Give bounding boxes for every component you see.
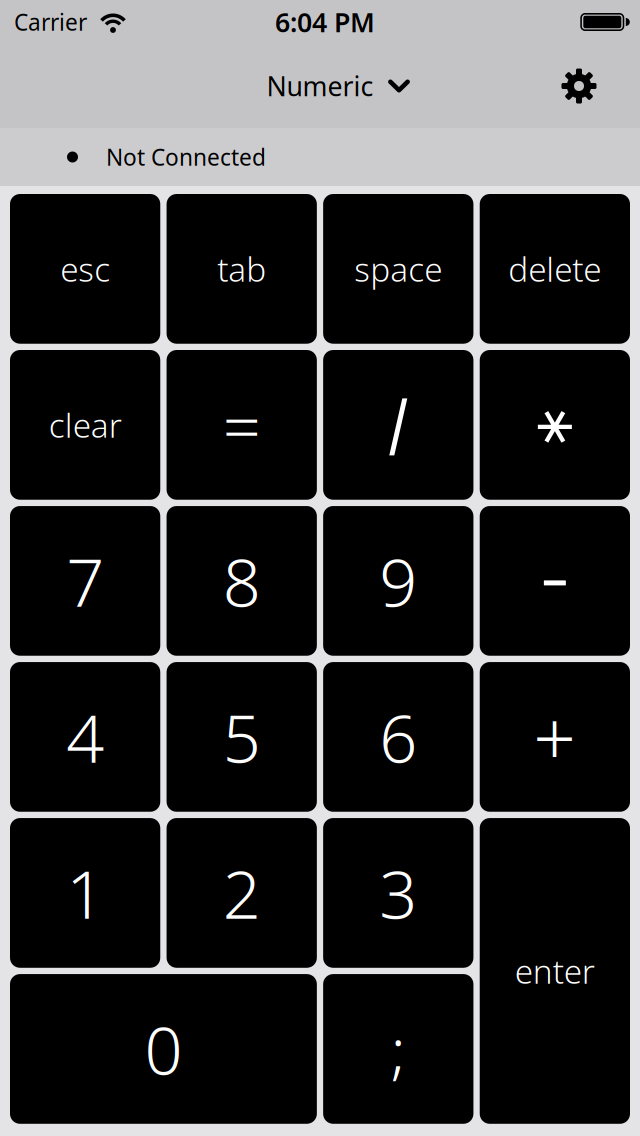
- staticText: 7: [66, 537, 104, 625]
- button[interactable]: 7: [10, 506, 160, 656]
- staticText: ;: [391, 1008, 406, 1090]
- staticText: 8: [223, 537, 261, 625]
- button[interactable]: 0: [10, 974, 317, 1124]
- button[interactable]: 4: [10, 662, 160, 812]
- button[interactable]: Settings: [561, 68, 597, 104]
- button[interactable]: 9: [323, 506, 473, 656]
- button[interactable]: esc: [10, 194, 160, 344]
- button[interactable]: Multiply: [480, 350, 630, 500]
- button[interactable]: Numeric: [262, 58, 420, 114]
- staticText: 3: [379, 849, 417, 937]
- button[interactable]: ;: [323, 974, 473, 1124]
- staticText: esc: [60, 247, 110, 291]
- button[interactable]: 3: [323, 818, 473, 968]
- staticText: Carrier: [14, 7, 87, 37]
- staticText: 5: [223, 693, 261, 781]
- button[interactable]: 5: [167, 662, 317, 812]
- staticText: 0: [144, 1005, 182, 1093]
- button[interactable]: delete: [480, 194, 630, 344]
- staticText: enter: [515, 949, 595, 993]
- button[interactable]: 2: [167, 818, 317, 968]
- staticText: Not Connected: [106, 142, 266, 172]
- staticText: space: [354, 247, 442, 291]
- staticText: +: [533, 687, 576, 786]
- button[interactable]: 8: [167, 506, 317, 656]
- button[interactable]: =: [167, 350, 317, 500]
- button[interactable]: 1: [10, 818, 160, 968]
- staticText: Numeric: [266, 68, 373, 104]
- button[interactable]: clear: [10, 350, 160, 500]
- button[interactable]: enter: [480, 818, 630, 1124]
- staticText: 1: [66, 849, 104, 937]
- button[interactable]: tab: [167, 194, 317, 344]
- staticText: 4: [66, 693, 104, 781]
- staticText: clear: [49, 403, 122, 447]
- button[interactable]: Minus: [480, 506, 630, 656]
- staticText: delete: [508, 247, 601, 291]
- button[interactable]: Divide: [323, 350, 473, 500]
- staticText: 6:04 PM: [275, 4, 375, 40]
- button[interactable]: space: [323, 194, 473, 344]
- staticText: tab: [217, 247, 266, 291]
- staticText: =: [223, 381, 261, 469]
- staticText: 9: [379, 537, 417, 625]
- staticText: 2: [223, 849, 261, 937]
- staticText: 6: [379, 693, 417, 781]
- button[interactable]: 6: [323, 662, 473, 812]
- button[interactable]: +: [480, 662, 630, 812]
